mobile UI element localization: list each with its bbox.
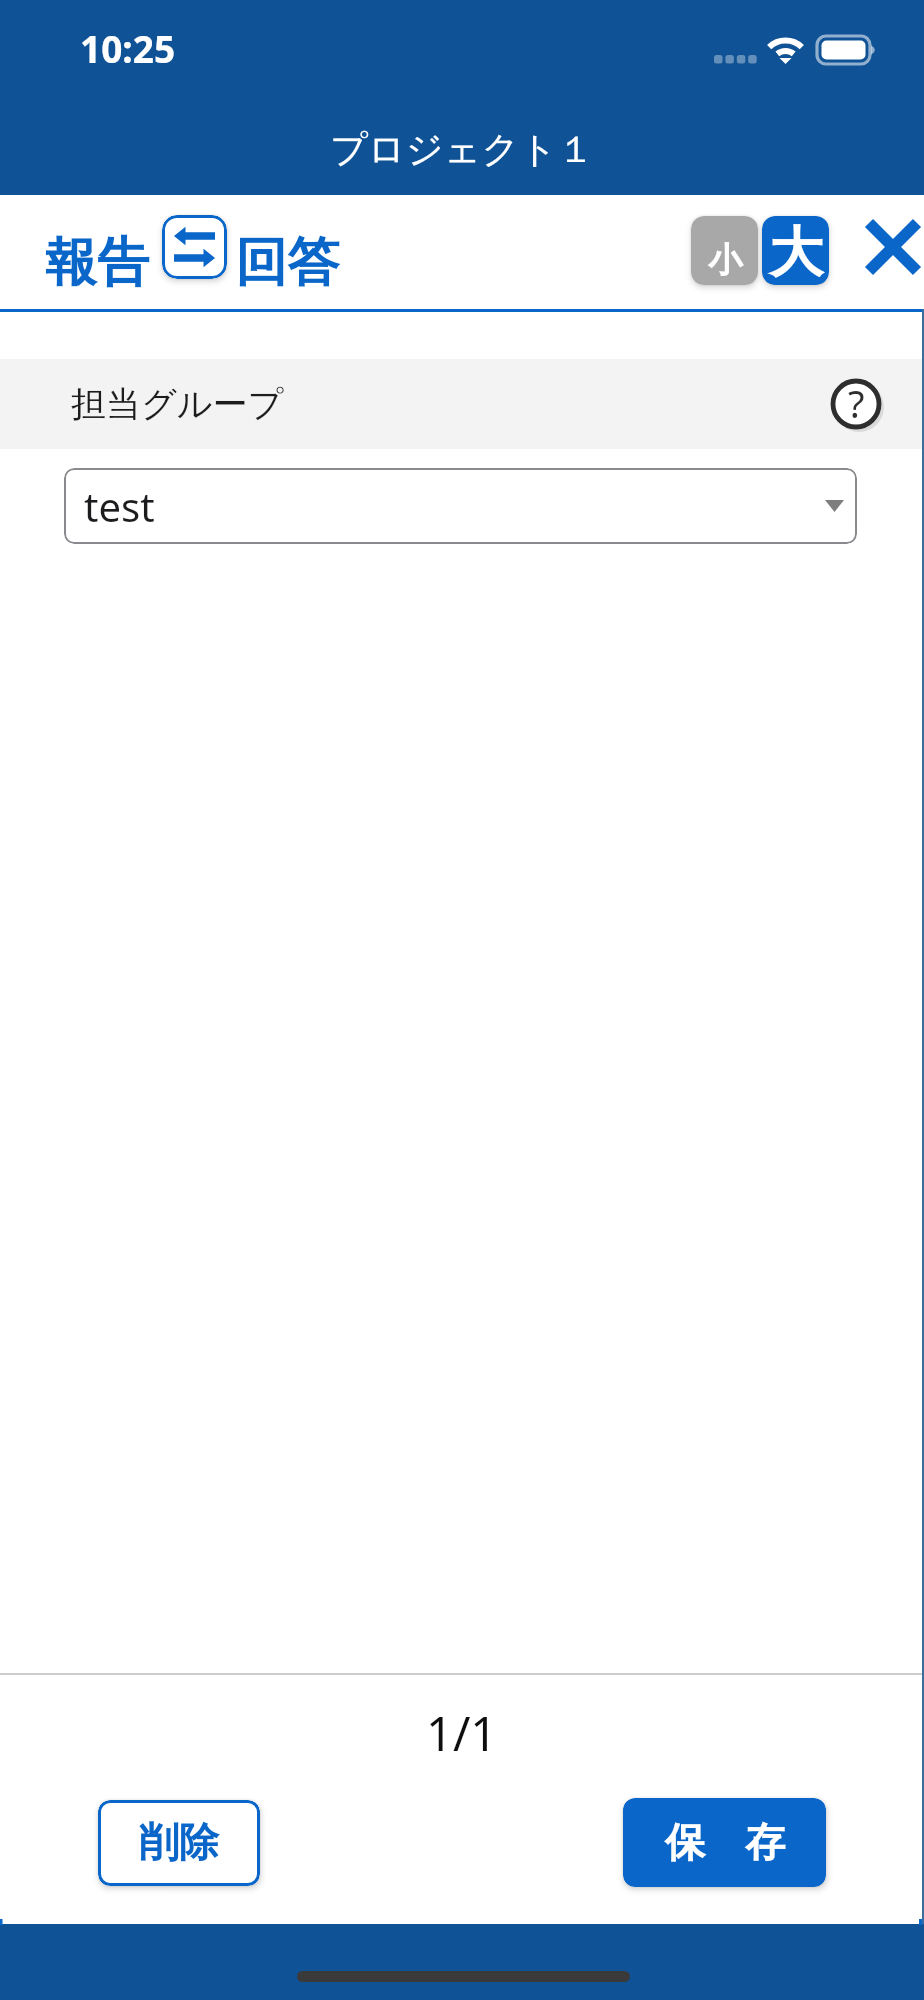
button[interactable]: 回答 xyxy=(233,217,343,287)
staticText: 保 存 xyxy=(665,1813,785,1868)
button[interactable]: Help xyxy=(827,375,885,433)
staticText: 報告 xyxy=(45,230,149,296)
staticText: 担当グループ xyxy=(71,382,284,426)
staticText: ? xyxy=(848,377,865,429)
staticText: 1/1 xyxy=(426,1701,498,1765)
staticText: 10:25 xyxy=(80,23,176,73)
button[interactable]: 削除 xyxy=(98,1800,260,1886)
button[interactable]: Close xyxy=(858,212,924,281)
staticText: 小 xyxy=(708,239,742,282)
staticText: test xyxy=(84,479,155,533)
staticText: 大 xyxy=(769,219,823,285)
staticText: 回答 xyxy=(235,230,339,296)
staticText: プロジェクト１ xyxy=(330,126,595,173)
button[interactable]: 大 xyxy=(762,216,829,285)
button[interactable]: Swap report and answer xyxy=(162,215,227,279)
button[interactable]: 小 xyxy=(691,216,758,285)
button[interactable]: test xyxy=(64,468,857,544)
staticText: 削除 xyxy=(139,1817,219,1867)
button[interactable]: 保 存 xyxy=(623,1798,826,1887)
button[interactable]: 報告 xyxy=(40,217,155,287)
